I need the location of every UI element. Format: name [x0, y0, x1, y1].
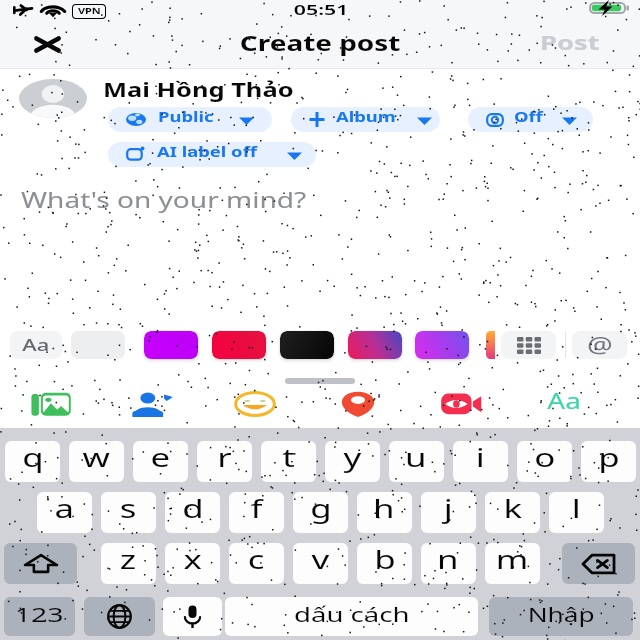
- staticText: @: [587, 331, 613, 357]
- button[interactable]: Feeling: [229, 385, 281, 423]
- staticText: f: [250, 492, 263, 525]
- button[interactable]: Backspace: [562, 543, 635, 584]
- button[interactable]: dấu cách: [225, 597, 478, 636]
- button[interactable]: Text style: [538, 385, 590, 423]
- button[interactable]: r: [197, 441, 252, 482]
- button[interactable]: f: [229, 492, 284, 533]
- button[interactable]: Dictation: [163, 597, 222, 636]
- staticText: AI label off: [157, 142, 257, 161]
- staticText: Public: [158, 107, 214, 126]
- staticText: m: [496, 543, 529, 576]
- staticText: w: [82, 441, 110, 474]
- button[interactable]: Close: [22, 31, 72, 67]
- button[interactable]: s: [101, 492, 156, 533]
- staticText: Aa: [547, 385, 582, 415]
- button[interactable]: e: [133, 441, 188, 482]
- button[interactable]: g: [293, 492, 348, 533]
- button[interactable]: v: [293, 543, 348, 584]
- staticText: u: [405, 441, 428, 474]
- button[interactable]: m: [485, 543, 540, 584]
- button[interactable]: l: [549, 492, 604, 533]
- button[interactable]: All backgrounds: [501, 331, 556, 359]
- staticText: dấu cách: [294, 602, 410, 628]
- button[interactable]: a: [37, 492, 92, 533]
- button[interactable]: t: [261, 441, 316, 482]
- staticText: v: [312, 543, 330, 576]
- button[interactable]: n: [421, 543, 476, 584]
- staticText: VPN: [78, 5, 101, 16]
- staticText: k: [504, 492, 522, 525]
- staticText: 123: [15, 601, 64, 628]
- button[interactable]: 123: [4, 597, 75, 636]
- staticText: n: [437, 543, 460, 576]
- button[interactable]: Next keyboard: [84, 597, 155, 636]
- staticText: i: [476, 441, 485, 474]
- button[interactable]: p: [581, 441, 636, 482]
- staticText: d: [182, 492, 204, 525]
- button[interactable]: k: [485, 492, 540, 533]
- button[interactable]: i: [453, 441, 508, 482]
- staticText: q: [22, 441, 44, 474]
- staticText: c: [248, 543, 265, 576]
- button[interactable]: Aa: [10, 331, 62, 359]
- staticText: j: [444, 492, 453, 525]
- button[interactable]: Tag people: [124, 385, 176, 423]
- staticText: b: [374, 543, 396, 576]
- button[interactable]: Off: [468, 107, 593, 132]
- button[interactable]: z: [101, 543, 156, 584]
- button[interactable]: Photo: [25, 385, 77, 423]
- staticText: y: [344, 441, 362, 474]
- staticText: g: [310, 492, 332, 525]
- staticText: z: [120, 543, 137, 576]
- staticText: What's on your mind?: [21, 186, 307, 215]
- staticText: 05:51: [294, 0, 349, 19]
- button[interactable]: Black: [280, 331, 334, 359]
- button[interactable]: Public: [108, 107, 272, 132]
- staticText: l: [572, 492, 581, 525]
- staticText: Aa: [22, 334, 50, 356]
- staticText: Nhập: [528, 602, 595, 628]
- button[interactable]: Purple: [144, 331, 198, 359]
- button[interactable]: Live video: [435, 385, 487, 423]
- button[interactable]: x: [165, 543, 220, 584]
- staticText: o: [534, 441, 556, 474]
- button[interactable]: d: [165, 492, 220, 533]
- button[interactable]: q: [5, 441, 60, 482]
- staticText: r: [217, 441, 232, 474]
- button[interactable]: b: [357, 543, 412, 584]
- button[interactable]: No background: [71, 331, 125, 359]
- button[interactable]: Mention: [572, 331, 627, 359]
- staticText: x: [184, 543, 202, 576]
- staticText: Create post: [240, 27, 401, 57]
- button[interactable]: AI label off: [108, 142, 316, 167]
- button[interactable]: Album: [291, 107, 440, 132]
- button[interactable]: Red: [212, 331, 266, 359]
- button[interactable]: Pink blue: [348, 331, 402, 359]
- staticText: Album: [336, 107, 397, 126]
- staticText: h: [373, 492, 396, 525]
- button[interactable]: w: [69, 441, 124, 482]
- staticText: a: [54, 492, 75, 525]
- button[interactable]: o: [517, 441, 572, 482]
- staticText: e: [150, 441, 170, 474]
- button[interactable]: Check in: [332, 385, 384, 423]
- button[interactable]: u: [389, 441, 444, 482]
- staticText: t: [282, 441, 296, 474]
- button[interactable]: Nhập: [489, 597, 633, 636]
- staticText: Mai Hồng Thảo: [103, 77, 295, 103]
- staticText: s: [120, 492, 137, 525]
- button[interactable]: Violet: [415, 331, 469, 359]
- button[interactable]: j: [421, 492, 476, 533]
- button[interactable]: c: [229, 543, 284, 584]
- button[interactable]: Shift: [4, 543, 77, 584]
- button[interactable]: y: [325, 441, 380, 482]
- staticText: p: [598, 441, 620, 474]
- staticText: Post: [540, 29, 600, 56]
- staticText: Off: [514, 107, 543, 126]
- button[interactable]: Post: [538, 29, 602, 68]
- button[interactable]: h: [357, 492, 412, 533]
